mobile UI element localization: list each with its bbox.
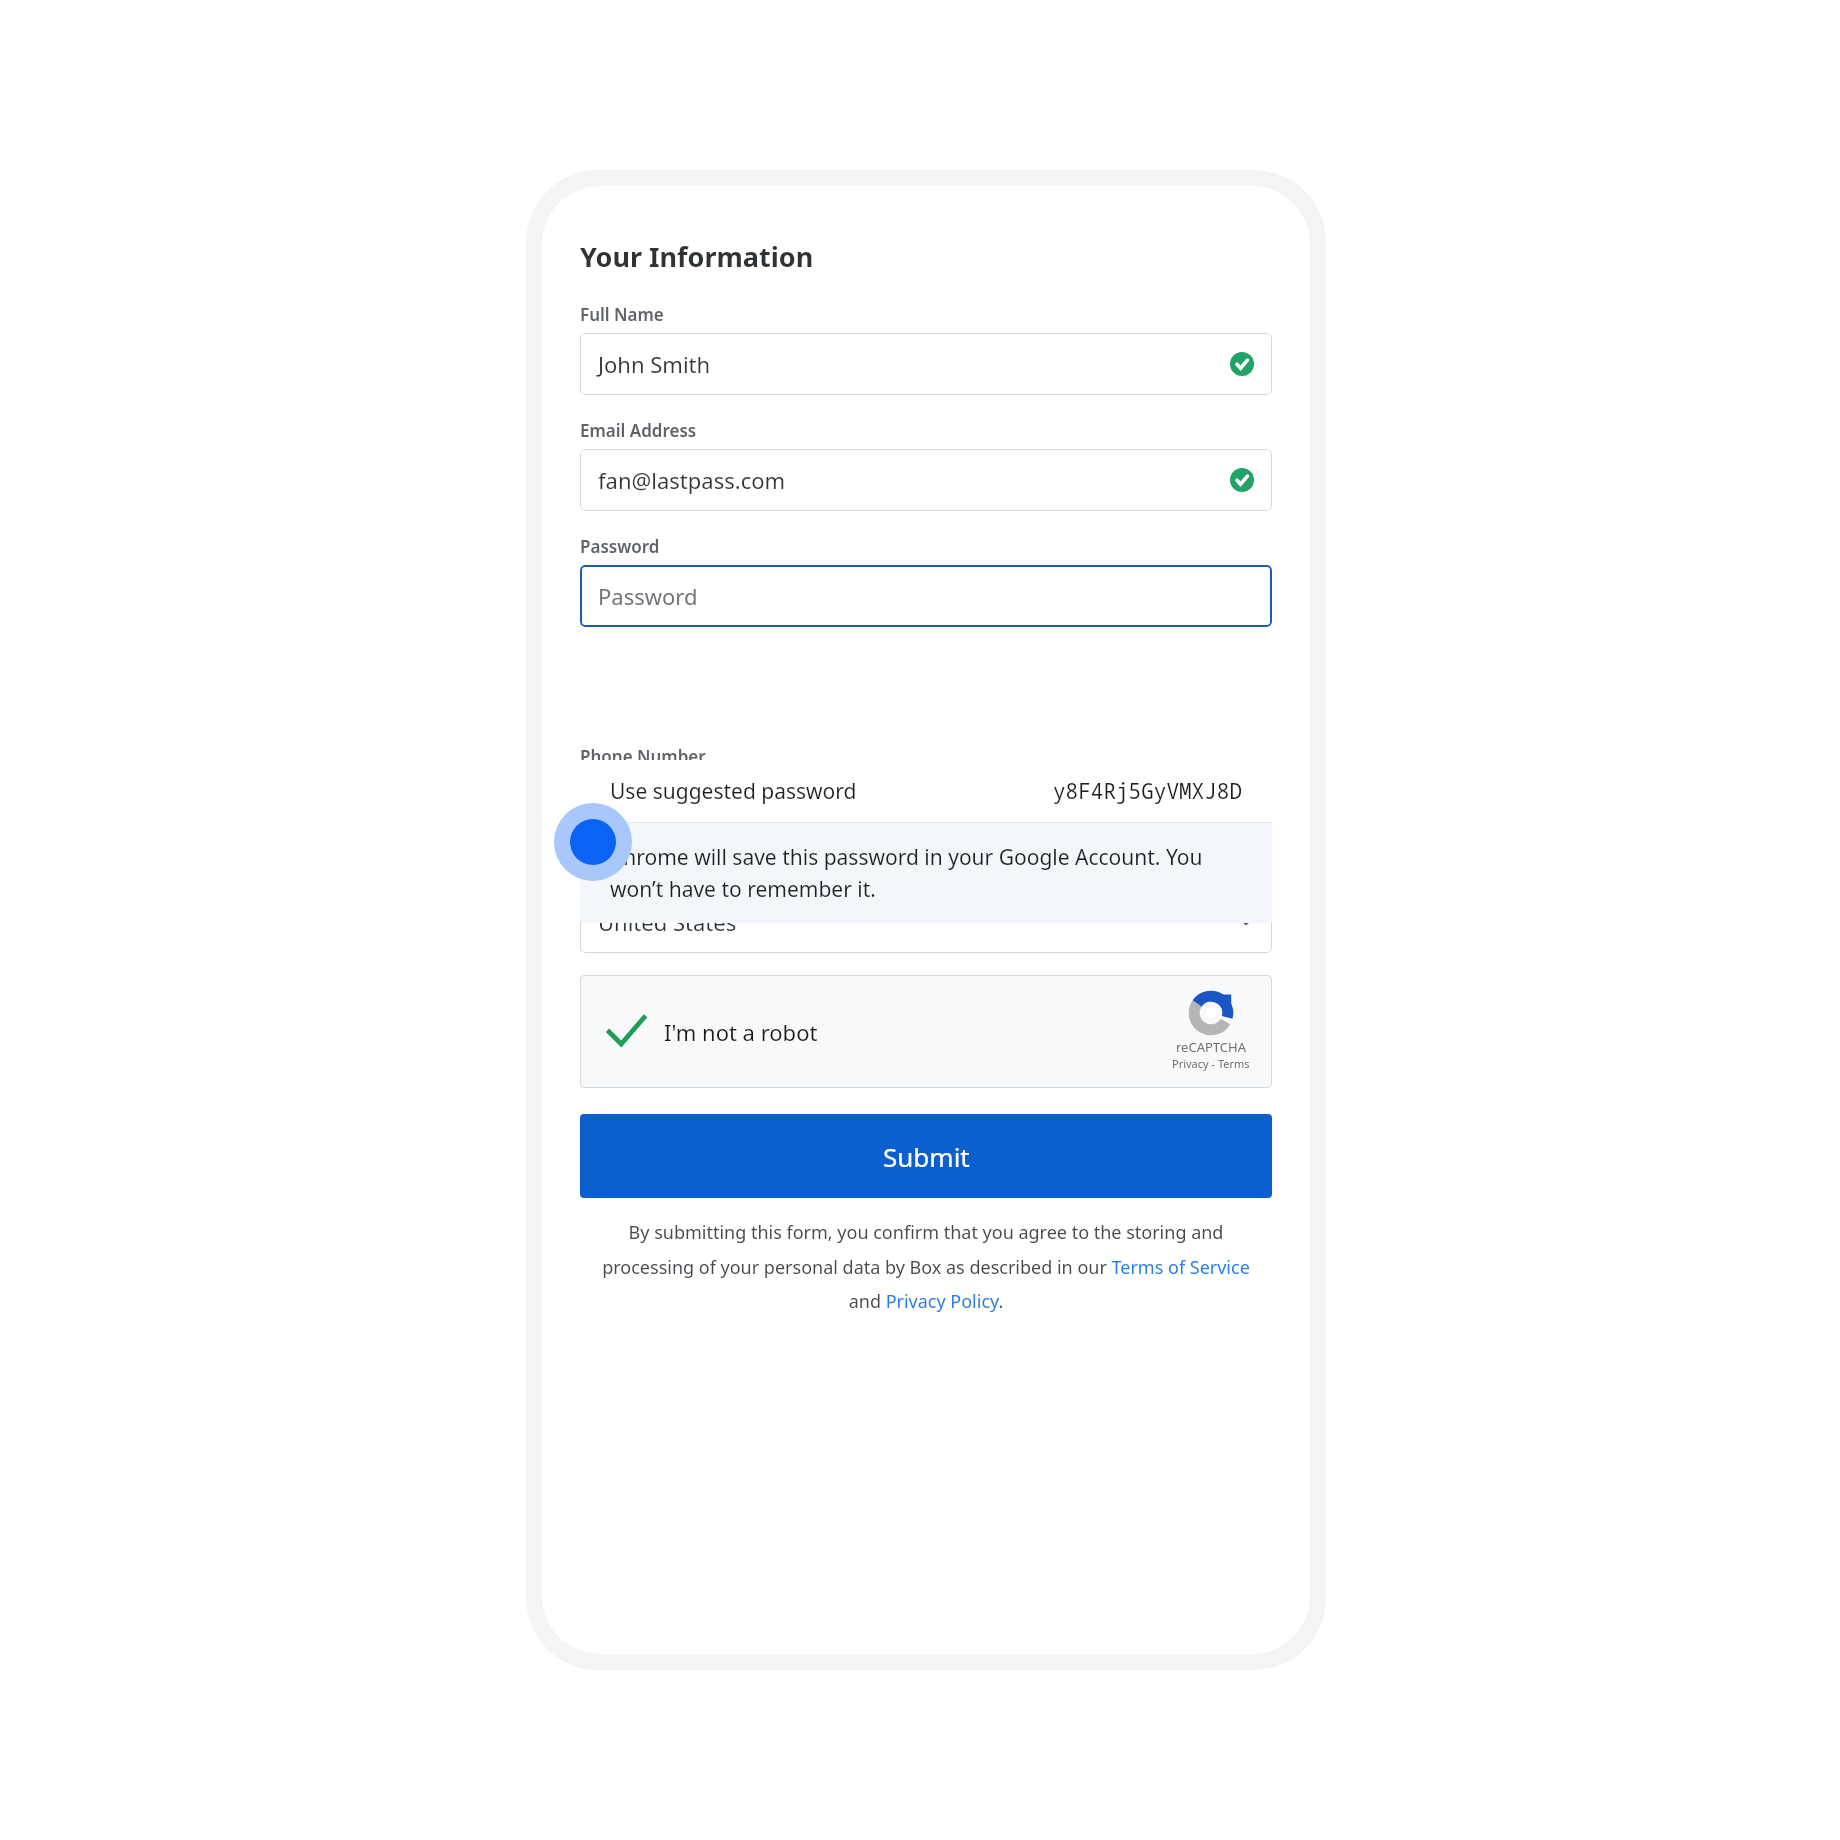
staticText: Password [598,581,1254,611]
staticText: Chrome will save this password in your G… [610,843,1242,903]
staticText: y8F4Rj5GyVMXJ8D [1053,777,1242,806]
staticText: Your Information [580,238,814,275]
staticText: United States [598,907,1238,937]
staticText: By submitting this form, you confirm tha… [592,1220,1260,1313]
staticText: fan@lastpass.com [598,465,1230,495]
button[interactable]: United States [580,891,1272,953]
staticText: Country [580,861,647,884]
staticText: Use suggested password [610,777,857,806]
staticText: I'm not a robot [664,1017,818,1047]
button[interactable]: Use suggested password [580,760,1272,822]
button[interactable]: I'm not a robot [580,975,1272,1088]
staticText: Submit [883,1139,970,1174]
other: Open dropdown [1238,914,1254,930]
button[interactable]: John Smith [580,333,1272,395]
other: reCAPTCHA [1190,992,1232,1034]
button[interactable]: fan@lastpass.com [580,449,1272,511]
button[interactable]: 555-123-4567 [580,775,1272,837]
staticText: reCAPTCHA [1176,1038,1246,1056]
staticText: 555-123-4567 [598,791,1254,821]
staticText: Phone Number [580,745,706,768]
staticText: John Smith [598,349,1230,379]
staticText: Password [580,535,660,558]
staticText: Full Name [580,303,664,326]
button[interactable]: Submit [580,1114,1272,1198]
staticText: Privacy - Terms [1172,1056,1250,1071]
button[interactable]: Password [580,565,1272,627]
staticText: Email Address [580,419,697,442]
